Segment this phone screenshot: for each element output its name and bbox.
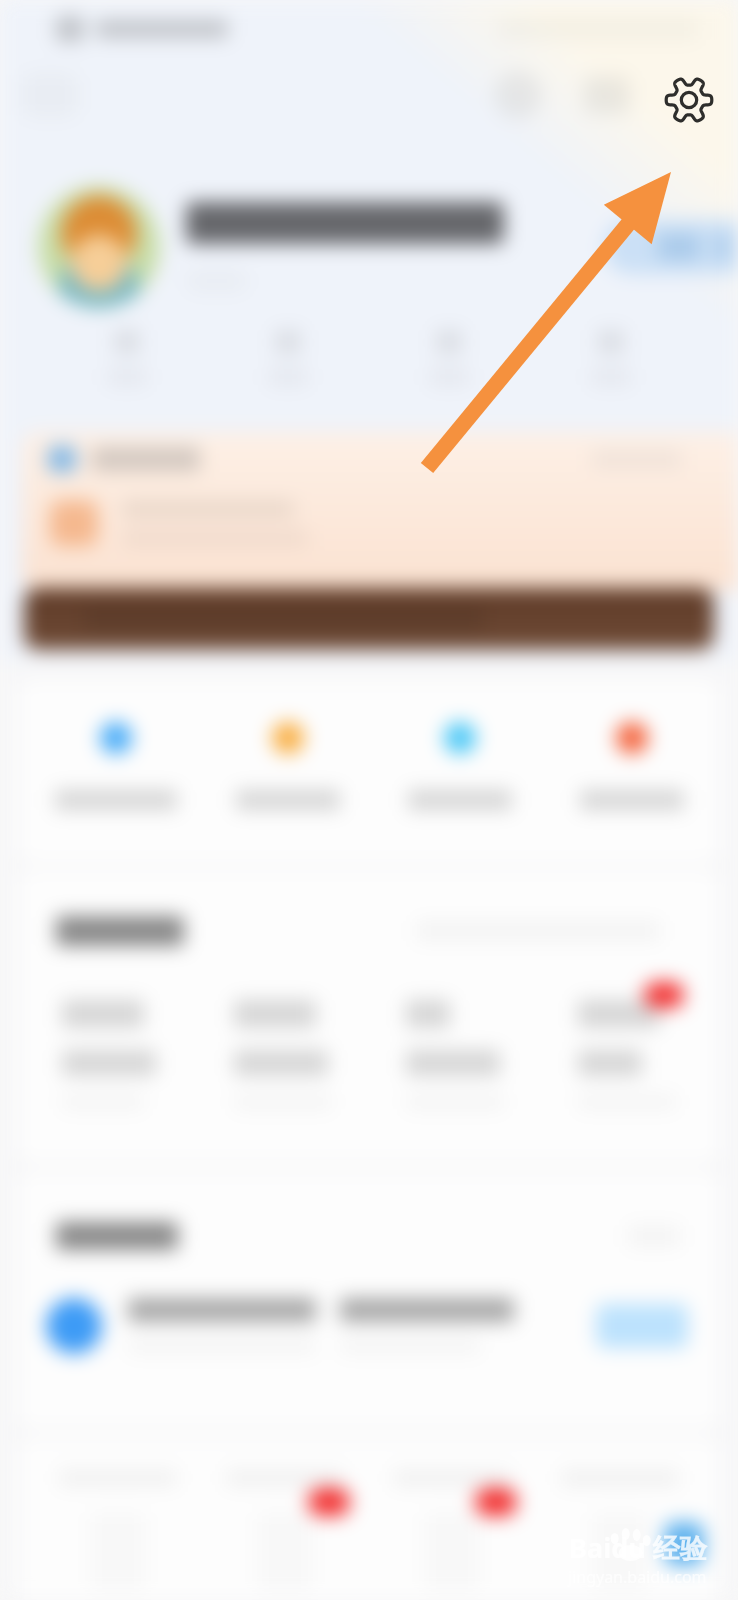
- button[interactable]: [24, 588, 714, 650]
- button[interactable]: [393, 1470, 511, 1590]
- button[interactable]: [530, 330, 692, 386]
- button[interactable]: [406, 1000, 504, 1110]
- button[interactable]: [567, 722, 697, 810]
- button[interactable]: [578, 1000, 676, 1110]
- button[interactable]: [395, 722, 525, 810]
- staticText: Baidu 经验: [569, 1529, 707, 1566]
- button[interactable]: [234, 1000, 332, 1110]
- button[interactable]: [51, 722, 181, 810]
- button[interactable]: [223, 722, 353, 810]
- button[interactable]: [368, 330, 530, 386]
- button[interactable]: [62, 1000, 156, 1110]
- button[interactable]: [226, 1470, 344, 1590]
- button[interactable]: [604, 220, 738, 274]
- button[interactable]: [46, 330, 207, 386]
- button[interactable]: [596, 1304, 688, 1348]
- button[interactable]: [561, 1470, 679, 1590]
- button[interactable]: Settings: [663, 74, 715, 126]
- button[interactable]: [207, 330, 368, 386]
- staticText: jingyan.baidu.com: [568, 1566, 707, 1588]
